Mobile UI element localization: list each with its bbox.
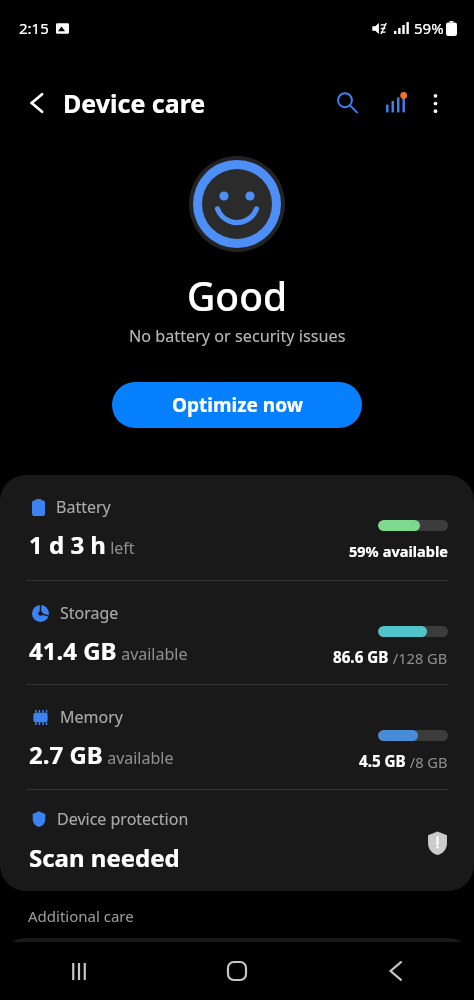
button[interactable]: Back — [316, 942, 474, 1000]
button[interactable]: Recents — [0, 942, 158, 1000]
staticText: 1 d 3 h — [29, 528, 106, 561]
button[interactable]: Memory — [0, 685, 474, 789]
button[interactable]: Diagnostics — [371, 79, 419, 127]
button[interactable]: Optimize now — [112, 382, 362, 428]
staticText: /8 GB — [406, 752, 448, 772]
staticText: Storage — [60, 602, 119, 624]
staticText: 59% — [414, 18, 444, 38]
staticText: 59% — [349, 541, 379, 561]
button[interactable]: Home — [158, 942, 316, 1000]
staticText: available — [117, 643, 188, 665]
staticText: available — [379, 541, 448, 561]
staticText: Good — [187, 269, 288, 322]
button[interactable]: Storage — [0, 581, 474, 684]
button[interactable]: Search — [323, 79, 371, 127]
staticText: No battery or security issues — [129, 325, 346, 347]
staticText: Battery — [56, 496, 111, 518]
staticText: Memory — [60, 706, 123, 728]
staticText: Additional care — [28, 906, 134, 926]
staticText: 4.5 GB — [359, 751, 406, 772]
staticText: left — [106, 537, 135, 559]
staticText: Device care — [63, 86, 206, 120]
staticText: 86.6 GB — [333, 647, 389, 668]
button[interactable]: Battery — [0, 475, 474, 580]
button[interactable]: Navigate up — [9, 76, 63, 130]
staticText: 2.7 GB — [29, 738, 103, 771]
button[interactable]: More options — [419, 79, 463, 127]
staticText: available — [103, 747, 174, 769]
staticText: Optimize now — [172, 392, 303, 418]
staticText: Scan needed — [29, 841, 180, 874]
staticText: /128 GB — [389, 648, 448, 668]
staticText: 2:15 — [19, 18, 49, 38]
staticText: Device protection — [57, 808, 189, 830]
staticText: 41.4 GB — [29, 634, 117, 667]
button[interactable]: Device protection — [0, 790, 474, 891]
